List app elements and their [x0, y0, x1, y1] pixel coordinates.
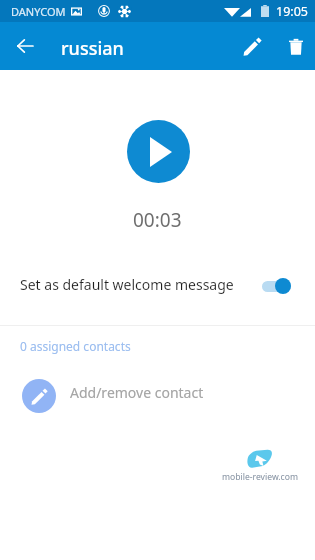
- button[interactable]: Add/remove contact: [0, 368, 315, 420]
- staticText: Set as default welcome message: [20, 275, 234, 294]
- staticText: Add/remove contact: [70, 383, 204, 402]
- button[interactable]: Delete: [274, 24, 315, 68]
- staticText: 19:05: [276, 3, 308, 20]
- staticText: 0 assigned contacts: [20, 338, 131, 354]
- button[interactable]: Back: [1, 22, 49, 70]
- staticText: russian: [61, 36, 124, 61]
- button[interactable]: [262, 276, 292, 296]
- button[interactable]: Edit: [230, 24, 274, 68]
- button[interactable]: Set as default welcome message: [0, 265, 315, 303]
- button[interactable]: Play: [127, 120, 190, 183]
- staticText: mobile-review.com: [222, 471, 298, 483]
- staticText: 00:03: [133, 207, 182, 233]
- staticText: DANYCOM: [11, 4, 66, 19]
